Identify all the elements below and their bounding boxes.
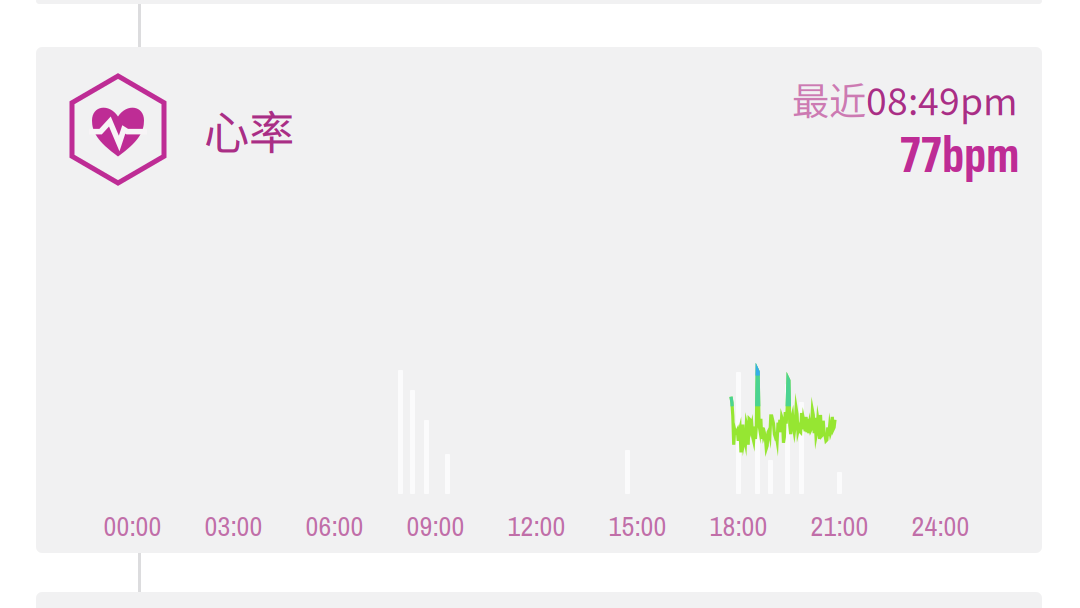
button[interactable]: 心率 — [36, 47, 1042, 553]
staticText: 06:00 — [305, 507, 363, 545]
staticText: 心率 — [204, 97, 294, 163]
staticText: 08:49pm — [866, 72, 1018, 126]
staticText: 18:00 — [709, 507, 767, 545]
staticText: 77bpm — [900, 116, 1020, 194]
staticText: 03:00 — [204, 507, 262, 545]
staticText: 最近 — [792, 72, 866, 126]
staticText: 15:00 — [608, 507, 666, 545]
staticText: 00:00 — [103, 507, 161, 545]
staticText: 12:00 — [507, 507, 565, 545]
staticText: 09:00 — [406, 507, 464, 545]
staticText: 24:00 — [911, 507, 969, 545]
staticText: 21:00 — [810, 507, 868, 545]
